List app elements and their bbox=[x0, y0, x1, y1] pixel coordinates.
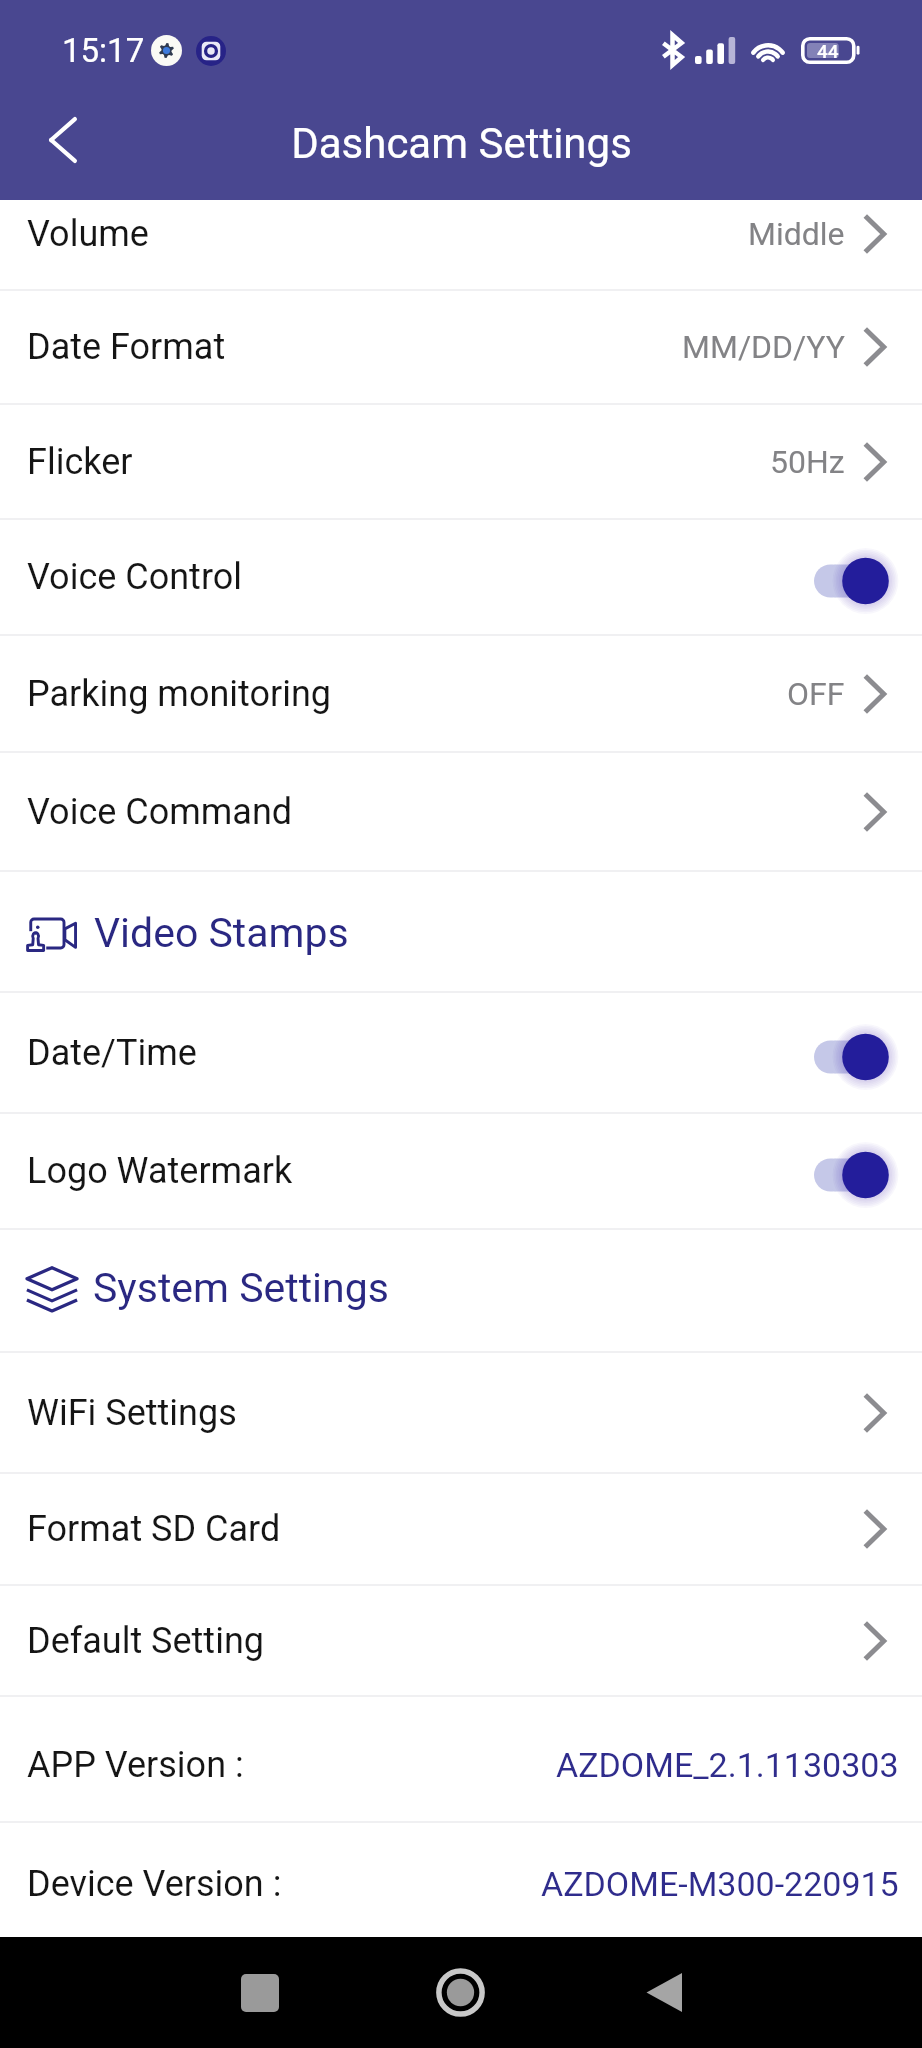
staticText: Device Version : bbox=[27, 1863, 282, 1905]
button[interactable]: Date/Time bbox=[0, 993, 922, 1112]
staticText: AZDOME-M300-220915 bbox=[541, 1864, 899, 1904]
staticText: Logo Watermark bbox=[27, 1150, 293, 1192]
button[interactable]: System Settings bbox=[0, 1230, 922, 1351]
staticText: MM/DD/YY bbox=[682, 328, 845, 366]
button[interactable]: Voice Control bbox=[814, 549, 894, 605]
button[interactable]: Date/Time bbox=[814, 1025, 894, 1081]
staticText: WiFi Settings bbox=[27, 1392, 237, 1434]
button[interactable]: Device Version : bbox=[0, 1823, 922, 1937]
button[interactable]: Default Setting bbox=[0, 1586, 922, 1695]
button[interactable]: Home bbox=[405, 1938, 515, 2048]
staticText: Date/Time bbox=[27, 1032, 197, 1074]
button[interactable]: Logo Watermark bbox=[814, 1143, 894, 1199]
staticText: Date Format bbox=[27, 326, 226, 368]
staticText: Flicker bbox=[27, 441, 133, 483]
staticText: Default Setting bbox=[27, 1620, 264, 1662]
staticText: Video Stamps bbox=[94, 909, 349, 957]
staticText: Voice Command bbox=[27, 791, 293, 833]
staticText: 50Hz bbox=[770, 443, 845, 481]
button[interactable]: Video Stamps bbox=[0, 872, 922, 991]
button[interactable]: Recent apps bbox=[205, 1938, 315, 2048]
staticText: AZDOME_2.1.1130303 bbox=[556, 1745, 899, 1785]
button[interactable]: Back bbox=[608, 1938, 718, 2048]
staticText: Format SD Card bbox=[27, 1508, 281, 1550]
button[interactable]: Logo Watermark bbox=[0, 1114, 922, 1228]
button[interactable]: Date Format bbox=[0, 291, 922, 403]
staticText: APP Version : bbox=[27, 1744, 244, 1786]
staticText: 15:17 bbox=[62, 31, 145, 70]
button[interactable]: Format SD Card bbox=[0, 1474, 922, 1584]
staticText: Volume bbox=[27, 213, 149, 255]
staticText: System Settings bbox=[93, 1264, 389, 1312]
button[interactable]: Voice Command bbox=[0, 753, 922, 870]
button[interactable]: Parking monitoring bbox=[0, 636, 922, 751]
staticText: Parking monitoring bbox=[27, 673, 332, 715]
staticText: OFF bbox=[787, 675, 845, 713]
staticText: Middle bbox=[748, 215, 845, 253]
button[interactable]: Back bbox=[12, 82, 114, 200]
button[interactable]: Volume bbox=[0, 200, 922, 289]
button[interactable]: Voice Control bbox=[0, 520, 922, 634]
button[interactable]: APP Version : bbox=[0, 1697, 922, 1821]
staticText: Voice Control bbox=[27, 556, 243, 598]
button[interactable]: WiFi Settings bbox=[0, 1353, 922, 1472]
staticText: 44 bbox=[817, 40, 839, 62]
staticText: Dashcam Settings bbox=[291, 119, 632, 168]
button[interactable]: Flicker bbox=[0, 405, 922, 518]
